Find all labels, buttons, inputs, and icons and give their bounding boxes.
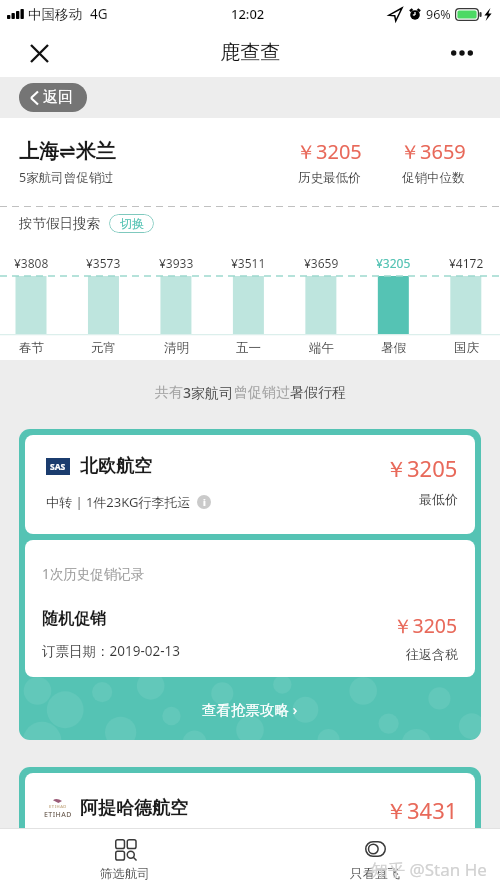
staticText: SAS xyxy=(50,461,66,473)
staticText: i xyxy=(203,496,206,509)
staticText: 知乎 @Stan He xyxy=(371,858,487,881)
button[interactable]: Close xyxy=(18,32,60,74)
staticText: ETIHAD xyxy=(49,804,67,810)
staticText: ¥3808 xyxy=(14,255,49,271)
staticText: 共有 xyxy=(155,384,183,402)
staticText: ￥3431 xyxy=(385,795,458,825)
staticText: 五一 xyxy=(236,340,261,356)
staticText: 上海⇌米兰 xyxy=(19,139,116,164)
button[interactable]: 筛选航司 xyxy=(0,828,250,889)
staticText: 促销中位数 xyxy=(402,170,465,186)
staticText: 中国移动 xyxy=(28,6,82,23)
staticText: ¥3205 xyxy=(376,255,411,271)
staticText: 元宵 xyxy=(91,340,116,356)
staticText: 最低价 xyxy=(419,491,458,507)
staticText: 只看直飞 xyxy=(350,866,400,882)
staticText: 春节 xyxy=(19,340,44,356)
staticText: 暑假行程 xyxy=(290,384,346,402)
staticText: 查看抢票攻略 › xyxy=(202,699,298,719)
staticText: 暑假 xyxy=(381,340,406,356)
staticText: 历史最低价 xyxy=(298,170,361,186)
button[interactable]: SAS xyxy=(25,435,475,534)
staticText: 国庆 xyxy=(454,340,479,356)
button[interactable]: More options xyxy=(441,32,483,74)
staticText: ¥3933 xyxy=(159,255,194,271)
staticText: 96% xyxy=(426,6,451,23)
staticText: ￥3205 xyxy=(393,612,458,639)
staticText: ￥3205 xyxy=(296,138,362,165)
staticText: 中转 | 1件23KG行李托运 xyxy=(46,493,191,511)
staticText: ¥3511 xyxy=(231,255,266,271)
staticText: 清明 xyxy=(164,340,189,356)
staticText: 返回 xyxy=(43,88,73,107)
staticText: 端午 xyxy=(309,340,334,356)
staticText: ￥3205 xyxy=(385,453,458,483)
staticText: 曾促销过 xyxy=(234,384,290,402)
staticText: ETIHAD xyxy=(44,810,72,820)
staticText: ¥3659 xyxy=(304,255,339,271)
staticText: ¥4172 xyxy=(449,255,484,271)
staticText: 12:02 xyxy=(231,5,265,23)
staticText: 4G xyxy=(90,5,108,23)
button[interactable]: 查看抢票攻略 › xyxy=(19,677,481,740)
button[interactable]: ETIHAD xyxy=(25,773,475,872)
button[interactable]: 1次历史促销记录 xyxy=(25,540,475,677)
staticText: 随机促销 xyxy=(42,609,106,629)
button[interactable]: 返回 xyxy=(19,83,87,112)
button[interactable]: 切换 xyxy=(109,214,154,233)
staticText: 1次历史促销记录 xyxy=(42,565,145,583)
button[interactable]: 只看直飞 xyxy=(250,828,500,889)
staticText: 筛选航司 xyxy=(100,866,150,882)
staticText: 北欧航空 xyxy=(80,455,152,478)
staticText: 往返含税 xyxy=(406,646,458,662)
staticText: 阿提哈德航空 xyxy=(80,797,188,820)
staticText: 订票日期：2019-02-13 xyxy=(42,642,180,660)
staticText: 3家航司 xyxy=(183,383,234,402)
staticText: 鹿查查 xyxy=(220,40,280,65)
staticText: ¥3573 xyxy=(86,255,121,271)
staticText: 切换 xyxy=(120,216,144,231)
staticText: 按节假日搜索 xyxy=(19,215,100,232)
staticText: 5家航司曾促销过 xyxy=(19,169,114,186)
staticText: ￥3659 xyxy=(400,138,466,165)
